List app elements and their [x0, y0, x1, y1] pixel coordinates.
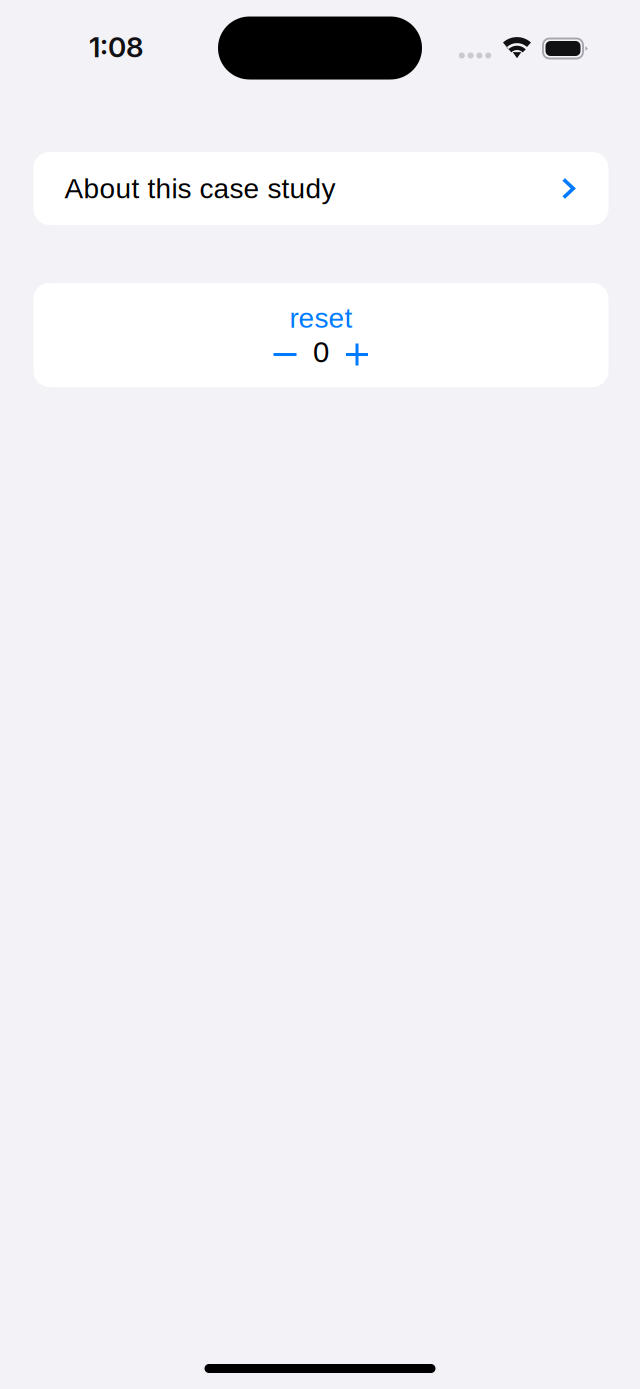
button[interactable]: Increment	[342, 337, 372, 367]
staticText: About this case study	[64, 173, 335, 204]
button[interactable]: Decrement	[270, 337, 300, 367]
staticText: 0	[313, 336, 329, 368]
button[interactable]: reset	[289, 305, 352, 331]
button[interactable]: About this case study	[33, 152, 608, 225]
staticText: 1:08	[89, 30, 144, 64]
staticText: reset	[289, 302, 352, 334]
